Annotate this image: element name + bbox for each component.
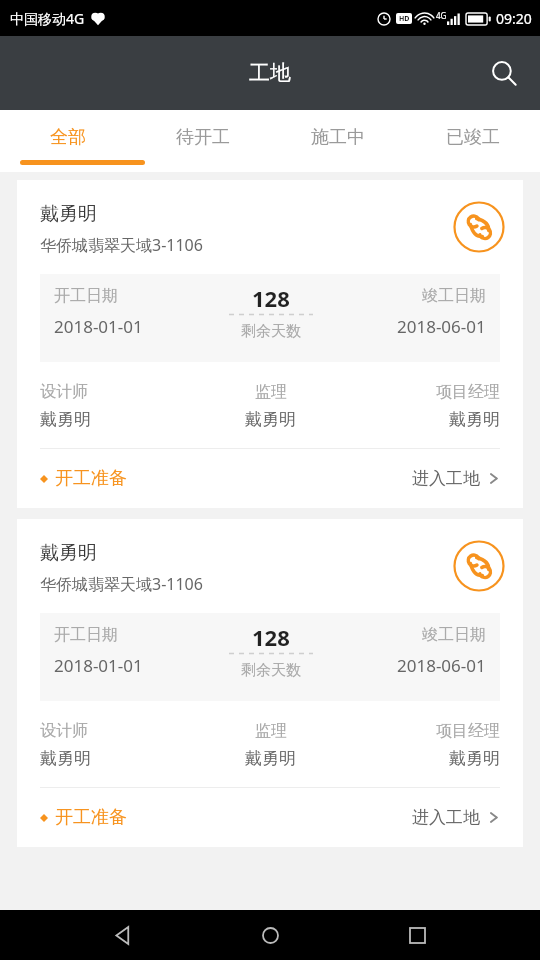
staticText: 待开工 xyxy=(176,126,230,149)
staticText: 华侨城翡翠天域3-1106 xyxy=(40,234,203,256)
staticText: 竣工日期 xyxy=(422,625,486,645)
button[interactable]: 戴勇明 xyxy=(17,519,523,847)
staticText: 128 xyxy=(252,622,290,652)
staticText: 开工准备 xyxy=(55,806,127,829)
staticText: 09:20 xyxy=(496,9,532,28)
staticText: 设计师 xyxy=(40,721,88,741)
staticText: 戴勇明 xyxy=(40,541,97,565)
button[interactable]: 待开工 xyxy=(135,110,270,172)
staticText: 工地 xyxy=(249,60,291,86)
staticText: 戴勇明 xyxy=(40,748,91,769)
button[interactable]: 进入工地 xyxy=(412,807,500,828)
staticText: 戴勇明 xyxy=(449,748,500,769)
staticText: 中国移动4G xyxy=(10,9,85,28)
staticText: 剩余天数 xyxy=(241,661,301,680)
staticText: 剩余天数 xyxy=(241,322,301,341)
button[interactable]: Search xyxy=(478,47,530,99)
staticText: 开工准备 xyxy=(55,467,127,490)
staticText: 设计师 xyxy=(40,382,88,402)
button[interactable]: 开工准备 xyxy=(40,467,127,490)
staticText: 竣工日期 xyxy=(422,286,486,306)
staticText: 戴勇明 xyxy=(449,409,500,430)
staticText: 监理 xyxy=(255,721,287,741)
button[interactable]: 进入工地 xyxy=(412,468,500,489)
button[interactable]: 戴勇明 xyxy=(17,180,523,508)
staticText: 2018-06-01 xyxy=(397,315,486,338)
button[interactable]: 已竣工 xyxy=(405,110,540,172)
button[interactable]: Back xyxy=(99,911,147,959)
staticText: 已竣工 xyxy=(446,126,500,149)
button[interactable]: 施工中 xyxy=(270,110,405,172)
button[interactable]: Call xyxy=(451,538,507,594)
staticText: 戴勇明 xyxy=(40,409,91,430)
staticText: 开工日期 xyxy=(54,286,118,306)
staticText: 2018-01-01 xyxy=(54,654,143,677)
staticText: 2018-01-01 xyxy=(54,315,143,338)
button[interactable]: Call xyxy=(451,199,507,255)
staticText: 4G xyxy=(436,10,447,21)
staticText: 项目经理 xyxy=(436,721,500,741)
staticText: 戴勇明 xyxy=(245,748,296,769)
button[interactable]: 开工准备 xyxy=(40,806,127,829)
staticText: 全部 xyxy=(50,126,86,149)
staticText: 戴勇明 xyxy=(245,409,296,430)
staticText: 施工中 xyxy=(311,126,365,149)
staticText: 华侨城翡翠天域3-1106 xyxy=(40,573,203,595)
staticText: 监理 xyxy=(255,382,287,402)
staticText: HD xyxy=(399,14,410,24)
button[interactable]: Home xyxy=(246,911,294,959)
staticText: 2018-06-01 xyxy=(397,654,486,677)
button[interactable]: 全部 xyxy=(0,110,135,172)
staticText: 进入工地 xyxy=(412,807,480,828)
staticText: 戴勇明 xyxy=(40,202,97,226)
staticText: 开工日期 xyxy=(54,625,118,645)
staticText: 项目经理 xyxy=(436,382,500,402)
button[interactable]: Recents xyxy=(393,911,441,959)
staticText: 128 xyxy=(252,283,290,313)
staticText: 进入工地 xyxy=(412,468,480,489)
